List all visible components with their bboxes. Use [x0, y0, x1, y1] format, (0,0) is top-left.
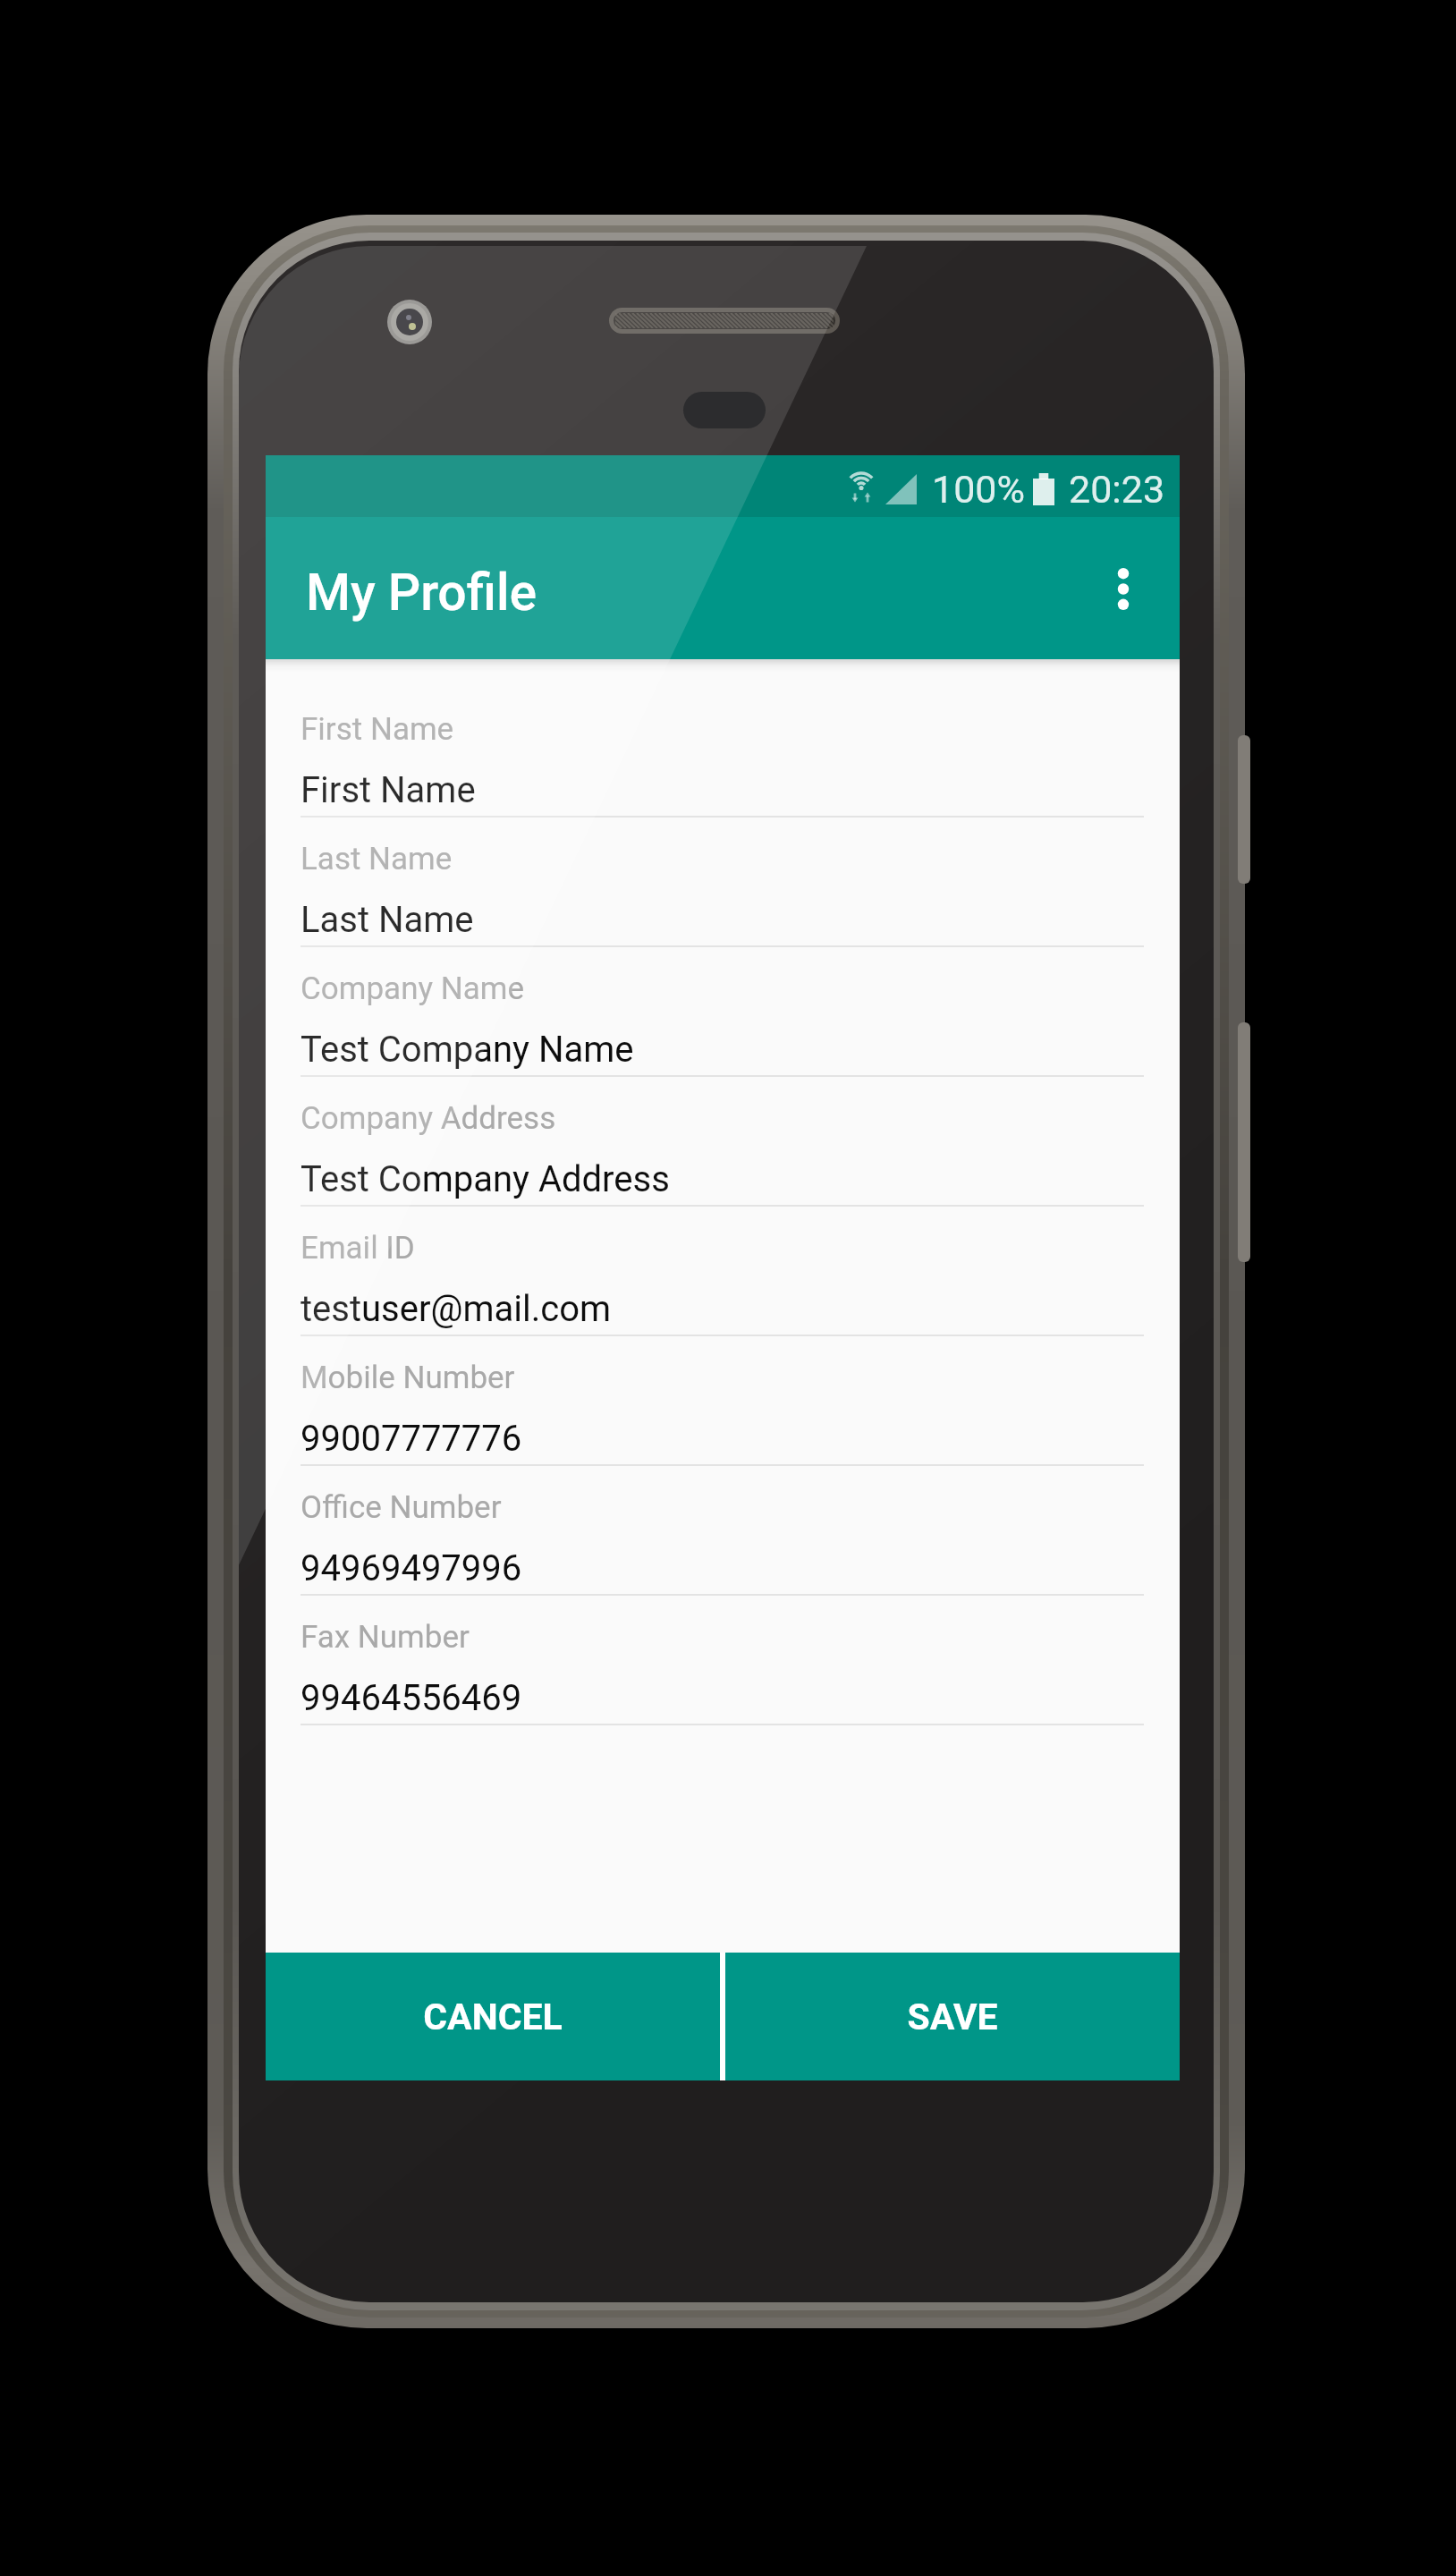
- button[interactable]: Fax Number: [266, 1596, 1180, 1725]
- button[interactable]: Mobile Number: [266, 1336, 1180, 1466]
- staticText: My Profile: [306, 563, 538, 623]
- staticText: 94969497996: [301, 1547, 522, 1589]
- staticText: Last Name: [301, 841, 453, 877]
- button[interactable]: First Name: [266, 659, 1180, 818]
- staticText: SAVE: [907, 1996, 998, 2038]
- button[interactable]: SAVE: [725, 1953, 1180, 2080]
- button[interactable]: CANCEL: [266, 1953, 720, 2080]
- staticText: Office Number: [301, 1489, 502, 1526]
- staticText: 100%: [932, 467, 1025, 512]
- button[interactable]: Email ID: [266, 1207, 1180, 1336]
- staticText: Mobile Number: [301, 1360, 515, 1396]
- staticText: testuser@mail.com: [301, 1288, 612, 1330]
- staticText: First Name: [301, 769, 476, 811]
- button[interactable]: Company Name: [266, 947, 1180, 1077]
- staticText: Test Company Name: [301, 1029, 634, 1071]
- staticText: First Name: [301, 711, 454, 748]
- button[interactable]: More options: [1080, 546, 1166, 631]
- staticText: Company Name: [301, 970, 524, 1007]
- staticText: 99464556469: [301, 1677, 522, 1719]
- staticText: Test Company Address: [301, 1158, 670, 1200]
- staticText: 20:23: [1069, 467, 1165, 512]
- button[interactable]: Office Number: [266, 1466, 1180, 1596]
- staticText: Email ID: [301, 1230, 415, 1267]
- button[interactable]: Company Address: [266, 1077, 1180, 1207]
- staticText: 99007777776: [301, 1418, 522, 1460]
- staticText: Fax Number: [301, 1619, 470, 1656]
- button[interactable]: Last Name: [266, 818, 1180, 947]
- staticText: CANCEL: [423, 1996, 563, 2038]
- staticText: Last Name: [301, 899, 474, 941]
- staticText: Company Address: [301, 1100, 556, 1137]
